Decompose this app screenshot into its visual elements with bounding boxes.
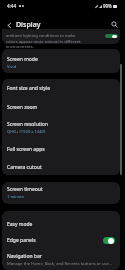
staticText: Font size and style [7,85,51,92]
button[interactable]: Screen resolution [2,118,120,137]
staticText: Screen zoom [7,104,38,111]
button[interactable]: Back [3,19,15,31]
button[interactable]: Navigation bar [2,250,120,270]
staticText: Manage the Home, Back, and Recents butto… [7,261,113,267]
staticText: Display [16,20,41,30]
button[interactable]: Search [108,18,120,30]
staticText: Easy mode [7,221,33,228]
staticText: Edge panels [7,237,36,244]
staticText: Screen timeout [7,186,43,193]
staticText: Camera cutout [7,164,42,171]
staticText: 1 minute [7,194,25,200]
button[interactable]: Edge panels [2,230,120,250]
button[interactable]: Adaptive colour tone [2,29,120,44]
staticText: 4:44 [7,3,17,9]
staticText: Navigation bar [7,253,42,260]
button[interactable]: Easy mode [2,214,120,234]
button[interactable]: Camera cutout [2,158,120,177]
button[interactable]: Screen mode [2,51,120,74]
staticText: Full screen apps [7,146,45,153]
button[interactable]: Screen zoom [2,98,120,117]
staticText: Screen resolution [7,121,48,128]
staticText: ambient lighting conditions to make colo… [6,33,87,49]
staticText: Vivid [7,64,17,70]
staticText: 99% [103,3,112,9]
button[interactable]: Screen timeout [2,182,120,204]
button[interactable]: Edge panels [103,237,115,244]
staticText: Screen mode [7,56,38,63]
button[interactable]: Full screen apps [2,140,120,159]
button[interactable]: Font size and style [2,79,120,98]
staticText: QHD+ (1520 x 1440) [7,129,46,135]
